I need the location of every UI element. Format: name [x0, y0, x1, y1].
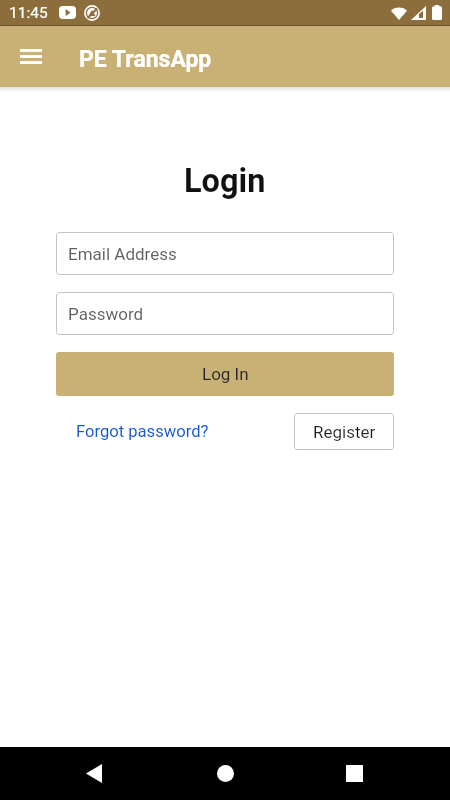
button[interactable]: Home [201, 749, 249, 797]
button[interactable]: Password [56, 292, 394, 335]
staticText: Login [184, 162, 266, 200]
button[interactable]: Recents [330, 749, 378, 797]
staticText: Email Address [68, 244, 177, 264]
button[interactable]: Register [294, 413, 394, 450]
staticText: Register [313, 422, 376, 442]
button[interactable]: Log In [56, 352, 394, 396]
staticText: Log In [202, 364, 249, 384]
button[interactable]: Menu [8, 33, 54, 79]
button[interactable]: Back [70, 749, 118, 797]
button[interactable]: Email Address [56, 232, 394, 275]
staticText: Forgot password? [76, 422, 209, 441]
button[interactable]: Forgot password? [70, 416, 215, 447]
staticText: Password [68, 304, 144, 324]
staticText: 11:45 [9, 4, 48, 22]
staticText: PE TransApp [79, 46, 212, 73]
